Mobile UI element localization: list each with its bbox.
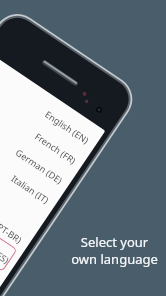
- button[interactable]: Phone showing language selection list: [0, 0, 166, 296]
- button[interactable]: Select your own language: [71, 233, 158, 268]
